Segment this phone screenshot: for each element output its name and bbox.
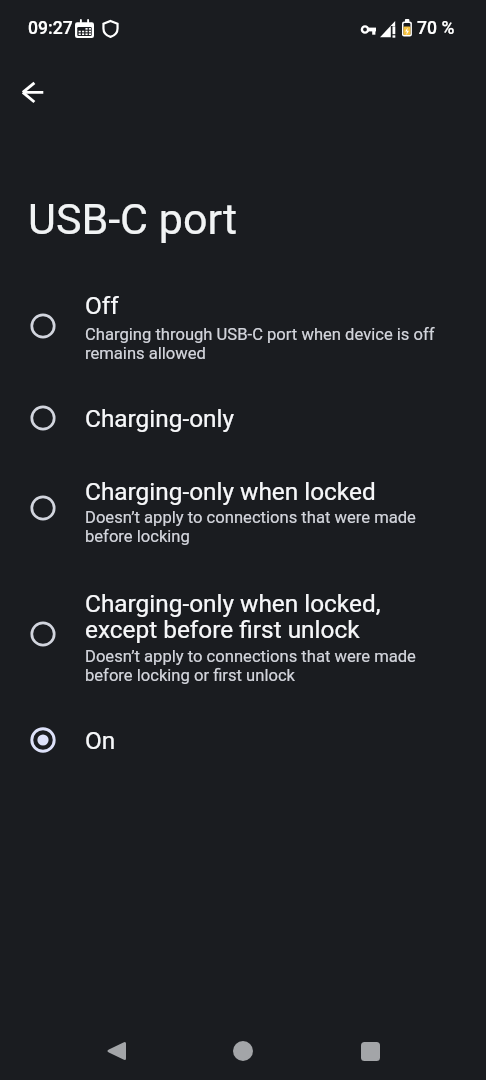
button[interactable]: Charging-only when locked, except before…: [0, 578, 486, 690]
button[interactable]: Back: [12, 70, 60, 118]
staticText: Doesn’t apply to connections that were m…: [85, 508, 416, 546]
staticText: Charging through USB-C port when device …: [85, 325, 435, 363]
staticText: Charging-only when locked: [85, 480, 376, 506]
button[interactable]: On: [0, 712, 486, 768]
staticText: Charging-only when locked, except before…: [85, 592, 381, 644]
button[interactable]: Charging-only when locked: [0, 468, 486, 548]
staticText: Off: [85, 294, 119, 320]
button[interactable]: Home: [206, 1029, 280, 1073]
staticText: 09:27: [28, 18, 73, 39]
staticText: Charging-only: [85, 407, 234, 433]
staticText: Doesn’t apply to connections that were m…: [85, 647, 416, 685]
button[interactable]: Off: [0, 286, 486, 366]
button[interactable]: Back: [79, 1029, 153, 1073]
staticText: 70 %: [417, 18, 455, 39]
button[interactable]: Recent apps: [333, 1029, 407, 1073]
staticText: On: [85, 729, 116, 755]
staticText: USB-C port: [28, 194, 238, 244]
button[interactable]: Charging-only: [0, 390, 486, 446]
